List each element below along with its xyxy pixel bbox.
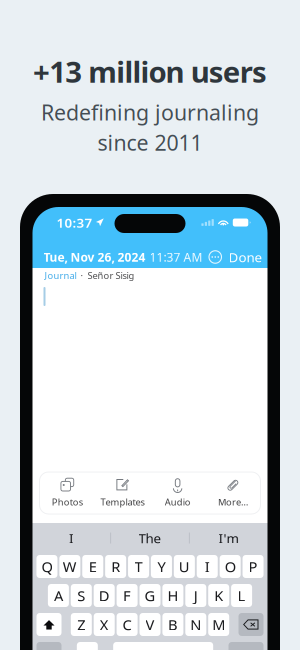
button[interactable]: E xyxy=(82,555,103,578)
staticText: D xyxy=(99,586,110,605)
staticText: Journal xyxy=(44,269,76,282)
button[interactable]: X xyxy=(94,613,115,636)
button[interactable]: R xyxy=(105,555,126,578)
staticText: 11:37 AM xyxy=(149,249,202,265)
staticText: J xyxy=(194,586,198,605)
button[interactable]: A xyxy=(48,584,69,607)
staticText: X xyxy=(100,615,109,634)
button[interactable]: More… xyxy=(205,472,260,514)
button[interactable]: T xyxy=(128,555,149,578)
button[interactable]: C xyxy=(117,613,138,636)
staticText: More… xyxy=(218,496,248,508)
button[interactable]: N xyxy=(185,613,206,636)
button[interactable]: Z xyxy=(71,613,92,636)
staticText: Templates xyxy=(100,496,144,508)
button[interactable]: Templates xyxy=(95,472,150,514)
button[interactable]: D xyxy=(94,584,115,607)
staticText: N xyxy=(190,615,201,634)
staticText: E xyxy=(89,557,97,576)
button[interactable]: U xyxy=(174,555,195,578)
staticText: Audio xyxy=(165,496,191,508)
staticText: I xyxy=(69,529,74,547)
button[interactable]: B xyxy=(162,613,183,636)
button[interactable]: More options xyxy=(209,251,221,263)
button[interactable]: M xyxy=(208,613,229,636)
staticText: C xyxy=(123,615,132,634)
staticText: U xyxy=(179,557,190,576)
staticText: Señor Sisig xyxy=(87,269,134,282)
button[interactable]: Y xyxy=(151,555,172,578)
button[interactable]: V xyxy=(139,613,160,636)
staticText: Done xyxy=(228,248,262,266)
staticText: K xyxy=(214,586,223,605)
staticText: since 2011 xyxy=(97,128,202,157)
button[interactable]: I'm xyxy=(190,523,267,553)
staticText: A xyxy=(54,586,63,605)
staticText: Photos xyxy=(52,496,83,508)
button[interactable]: Delete xyxy=(238,613,263,636)
staticText: P xyxy=(249,557,258,576)
staticText: H xyxy=(167,586,178,605)
button[interactable]: Shift xyxy=(36,613,61,636)
staticText: L xyxy=(238,586,246,605)
staticText: G xyxy=(144,586,155,605)
staticText: M xyxy=(212,615,225,634)
button[interactable]: Done xyxy=(228,248,262,266)
staticText: · xyxy=(80,269,83,282)
button[interactable]: P xyxy=(243,555,264,578)
staticText: B xyxy=(168,615,178,634)
staticText: Redefining journaling xyxy=(41,98,259,126)
staticText: I'm xyxy=(219,529,239,547)
staticText: +13 million users xyxy=(33,52,267,91)
button[interactable]: Audio xyxy=(150,472,205,514)
staticText: I xyxy=(205,557,210,576)
button[interactable]: W xyxy=(59,555,80,578)
button[interactable]: L xyxy=(231,584,252,607)
staticText: F xyxy=(123,586,131,605)
button[interactable]: H xyxy=(162,584,183,607)
staticText: O xyxy=(225,557,236,576)
button[interactable]: Photos xyxy=(39,472,95,514)
staticText: The xyxy=(138,529,161,547)
button[interactable]: Q xyxy=(36,555,57,578)
staticText: R xyxy=(111,557,120,576)
staticText: Q xyxy=(41,557,52,576)
button[interactable]: Journal xyxy=(44,269,76,282)
staticText: T xyxy=(135,557,143,576)
staticText: 10:37 xyxy=(56,214,92,231)
staticText: V xyxy=(145,615,154,634)
staticText: S xyxy=(77,586,85,605)
staticText: Y xyxy=(157,557,165,576)
button[interactable]: S xyxy=(71,584,92,607)
staticText: W xyxy=(63,557,77,576)
button[interactable]: J xyxy=(185,584,206,607)
staticText: Z xyxy=(77,615,85,634)
button[interactable]: The xyxy=(111,523,189,553)
button[interactable]: G xyxy=(139,584,160,607)
button[interactable]: I xyxy=(32,523,110,553)
button[interactable]: F xyxy=(117,584,138,607)
button[interactable]: O xyxy=(220,555,241,578)
staticText: Tue, Nov 26, 2024 xyxy=(43,249,145,265)
button[interactable]: I xyxy=(197,555,218,578)
button[interactable]: K xyxy=(208,584,229,607)
